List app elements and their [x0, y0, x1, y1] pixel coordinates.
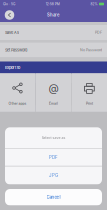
staticText: Share: [47, 12, 60, 18]
button[interactable]: Back: [2, 8, 16, 22]
button[interactable]: @: [36, 73, 71, 111]
staticText: Set Password: [5, 48, 27, 52]
button[interactable]: Print: [72, 73, 107, 111]
staticText: 82%: [90, 2, 97, 6]
staticText: 12:58 PM: [46, 2, 60, 6]
staticText: Glo · 5G: [3, 2, 15, 6]
staticText: PDF: [95, 30, 102, 35]
staticText: Cancel: [46, 195, 60, 200]
staticText: Print: [86, 101, 93, 105]
button[interactable]: Set Password: [0, 42, 107, 57]
staticText: No Password: [80, 48, 102, 52]
button[interactable]: Cancel: [5, 189, 102, 205]
staticText: Email: [49, 101, 58, 105]
button[interactable]: JPG: [5, 166, 102, 184]
staticText: @: [48, 81, 58, 94]
staticText: JPG: [49, 173, 58, 178]
button[interactable]: Other apps: [0, 73, 35, 111]
staticText: PDF: [49, 155, 58, 160]
button[interactable]: Save As: [0, 25, 107, 40]
staticText: Select save as: [41, 136, 65, 140]
staticText: Other apps: [9, 101, 27, 105]
staticText: Save As: [5, 30, 19, 35]
staticText: Export to: [5, 65, 20, 70]
button[interactable]: PDF: [5, 149, 102, 166]
